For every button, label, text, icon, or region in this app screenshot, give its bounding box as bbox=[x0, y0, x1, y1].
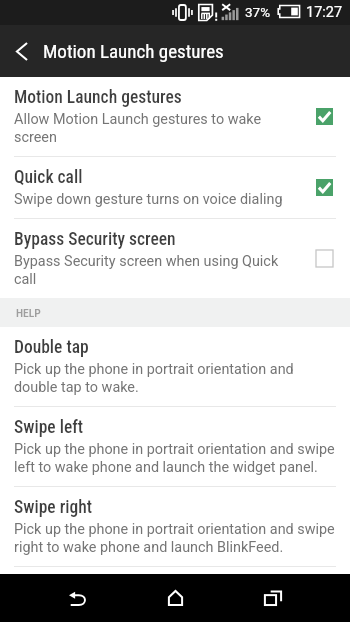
staticText: Pick up the phone in portrait orientatio… bbox=[14, 441, 336, 476]
staticText: Motion Launch gestures bbox=[43, 40, 224, 62]
button[interactable]: Enabled bbox=[316, 108, 333, 125]
button[interactable]: Motion Launch gestures bbox=[0, 77, 350, 156]
staticText: Motion Launch gestures bbox=[14, 87, 182, 108]
button[interactable]: Double tap bbox=[0, 327, 350, 406]
staticText: Bypass Security screen when using Quick … bbox=[14, 253, 294, 288]
button[interactable]: Bypass Security screen bbox=[0, 219, 350, 298]
staticText: Swipe left bbox=[14, 417, 84, 438]
staticText: 37% bbox=[245, 4, 271, 20]
staticText: Pick up the phone in portrait orientatio… bbox=[14, 361, 336, 396]
button[interactable]: Swipe left bbox=[0, 407, 350, 486]
button[interactable]: Back bbox=[29, 574, 126, 622]
staticText: Quick call bbox=[14, 167, 83, 188]
button[interactable]: Swipe right bbox=[0, 487, 350, 566]
button[interactable]: Home bbox=[126, 574, 224, 622]
staticText: HELP bbox=[16, 306, 41, 319]
button[interactable]: Quick call bbox=[0, 157, 350, 218]
staticText: Double tap bbox=[14, 337, 89, 358]
staticText: Pick up the phone in portrait orientatio… bbox=[14, 521, 336, 556]
button[interactable]: Recent apps bbox=[224, 574, 322, 622]
staticText: Allow Motion Launch gestures to wake scr… bbox=[14, 111, 294, 146]
button[interactable]: Navigate up bbox=[0, 25, 43, 77]
staticText: Bypass Security screen bbox=[14, 229, 176, 250]
staticText: 17:27 bbox=[306, 4, 343, 21]
staticText: Swipe down gesture turns on voice dialin… bbox=[14, 191, 283, 208]
button[interactable]: Disabled bbox=[316, 250, 333, 267]
staticText: Swipe right bbox=[14, 497, 93, 518]
button[interactable]: Enabled bbox=[316, 179, 333, 196]
